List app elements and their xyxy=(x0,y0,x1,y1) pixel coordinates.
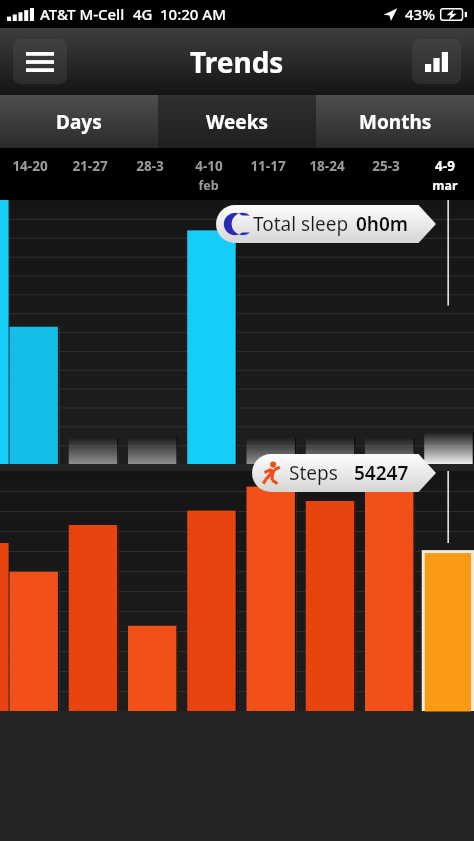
staticText: feb xyxy=(198,177,219,194)
staticText: Weeks xyxy=(206,109,268,135)
staticText: 54247 xyxy=(354,460,409,486)
staticText: 4-9 xyxy=(435,157,455,175)
button[interactable]: Months xyxy=(316,95,474,148)
staticText: Steps xyxy=(289,460,338,486)
staticText: 21-27 xyxy=(72,157,108,175)
button[interactable]: Days xyxy=(0,95,158,148)
staticText: 4G xyxy=(133,4,153,24)
staticText: 0h0m xyxy=(356,211,409,237)
staticText: Total sleep xyxy=(253,211,349,237)
staticText: 10:20 AM xyxy=(160,4,226,24)
staticText: 11-17 xyxy=(250,157,286,175)
staticText: Days xyxy=(56,109,102,135)
staticText: 43% xyxy=(405,4,435,24)
staticText: 25-3 xyxy=(372,157,400,175)
staticText: 4-10 xyxy=(195,157,223,175)
staticText: 18-24 xyxy=(309,157,345,175)
staticText: mar xyxy=(432,177,458,194)
staticText: 14-20 xyxy=(12,157,48,175)
button[interactable]: Menu xyxy=(13,39,67,84)
staticText: 28-3 xyxy=(136,157,164,175)
staticText: Trends xyxy=(190,43,284,81)
button[interactable]: Weeks xyxy=(158,95,316,148)
staticText: AT&T M-Cell xyxy=(40,4,125,24)
staticText: Months xyxy=(359,109,432,135)
button[interactable]: Chart view xyxy=(412,39,461,84)
